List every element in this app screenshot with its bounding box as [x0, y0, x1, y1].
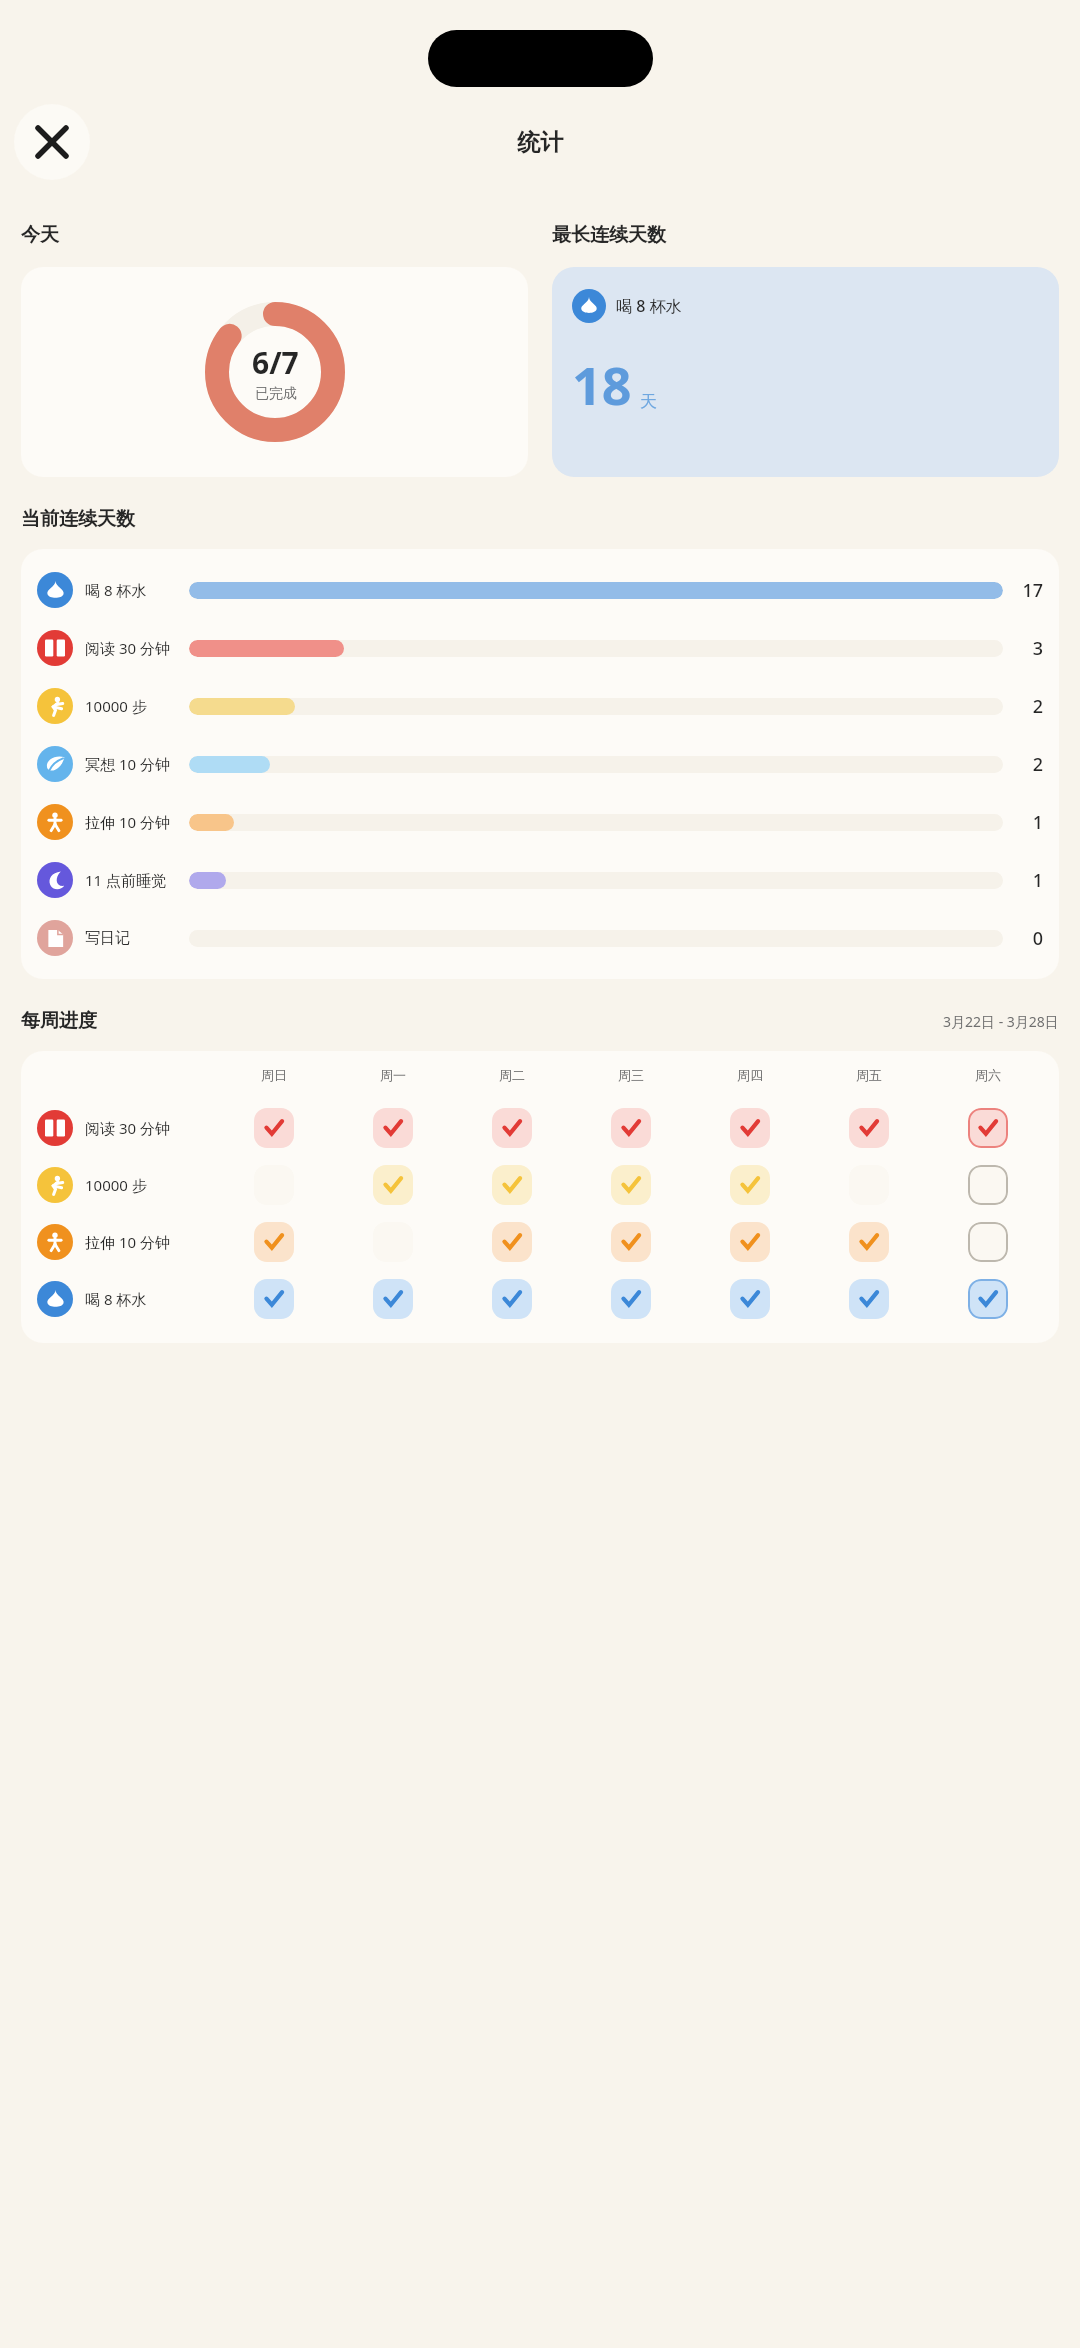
staticText: 冥想 10 分钟 [85, 754, 170, 774]
button[interactable]: 喝 8 杯水 [21, 561, 1059, 619]
staticText: 周六 [975, 1067, 1001, 1083]
staticText: 周三 [618, 1067, 644, 1083]
staticText: 周一 [380, 1067, 406, 1083]
staticText: 阅读 30 分钟 [85, 638, 170, 658]
button[interactable]: 喝 8 杯水 [552, 267, 1059, 477]
staticText: 0 [1003, 926, 1043, 951]
staticText: 17 [1003, 578, 1043, 603]
staticText: 11 点前睡觉 [85, 870, 167, 890]
staticText: 最长连续天数 [552, 223, 666, 247]
button[interactable]: 6/7 [21, 267, 528, 477]
staticText: 拉伸 10 分钟 [85, 1232, 170, 1252]
staticText: 统计 [517, 128, 563, 157]
staticText: 周二 [499, 1067, 525, 1083]
staticText: 天 [640, 391, 657, 412]
staticText: 每周进度 [21, 1009, 97, 1033]
button[interactable]: 10000 步 [37, 1156, 1047, 1213]
staticText: 已完成 [255, 385, 297, 403]
staticText: 10000 步 [85, 696, 147, 716]
staticText: 18 [572, 349, 632, 420]
staticText: 3月22日 - 3月28日 [943, 1012, 1059, 1031]
staticText: 3 [1003, 636, 1043, 661]
staticText: 2 [1003, 752, 1043, 777]
staticText: 喝 8 杯水 [85, 1289, 147, 1309]
staticText: 周四 [737, 1067, 763, 1083]
staticText: 喝 8 杯水 [616, 295, 682, 317]
staticText: 1 [1003, 810, 1043, 835]
button[interactable]: 拉伸 10 分钟 [21, 793, 1059, 851]
button[interactable]: 写日记 [21, 909, 1059, 967]
staticText: 拉伸 10 分钟 [85, 812, 170, 832]
staticText: 阅读 30 分钟 [85, 1118, 170, 1138]
staticText: 周五 [856, 1067, 882, 1083]
staticText: 6/7 [252, 342, 299, 383]
staticText: 写日记 [85, 929, 130, 948]
button[interactable]: 阅读 30 分钟 [37, 1099, 1047, 1156]
staticText: 喝 8 杯水 [85, 580, 147, 600]
staticText: 10000 步 [85, 1175, 147, 1195]
staticText: 2 [1003, 694, 1043, 719]
button[interactable]: 11 点前睡觉 [21, 851, 1059, 909]
button[interactable]: 10000 步 [21, 677, 1059, 735]
staticText: 当前连续天数 [21, 507, 135, 531]
button[interactable]: 冥想 10 分钟 [21, 735, 1059, 793]
staticText: 今天 [21, 223, 59, 247]
staticText: 周日 [261, 1067, 287, 1083]
button[interactable]: 关闭 [14, 104, 90, 180]
staticText: 1 [1003, 868, 1043, 893]
button[interactable]: 阅读 30 分钟 [21, 619, 1059, 677]
button[interactable]: 拉伸 10 分钟 [37, 1213, 1047, 1270]
button[interactable]: 喝 8 杯水 [37, 1270, 1047, 1327]
